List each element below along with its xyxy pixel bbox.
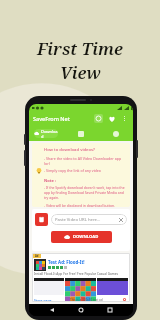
staticText: - Simply copy the link of any video (44, 168, 101, 173)
button[interactable]: Recent apps (104, 304, 116, 316)
staticText: Test Ad: Flood-It! (48, 259, 85, 265)
button[interactable]: How to download videos? (32, 143, 130, 207)
staticText: app by finding Download Saved Private Me… (44, 190, 124, 195)
button[interactable]: Paste (35, 213, 48, 226)
staticText: - If the Spotify download doesn't work, … (44, 185, 125, 190)
button[interactable]: Help (94, 114, 103, 123)
button[interactable]: Back (46, 304, 58, 316)
staticText: Ad (35, 254, 39, 258)
staticText: Note : (44, 178, 57, 183)
staticText: try again. (44, 195, 60, 200)
button[interactable]: Download (34, 129, 58, 138)
staticText: Paste Video URL here... (55, 217, 101, 223)
button[interactable]: Store page (34, 298, 52, 301)
button[interactable]: Home (75, 304, 87, 316)
button[interactable]: More options (120, 114, 129, 123)
staticText: This is a 320x50 test ad (70, 298, 103, 301)
button[interactable]: Favorites (107, 114, 116, 123)
staticText: How to download videos? (44, 147, 95, 153)
staticText: View (60, 61, 101, 84)
button[interactable]: Ad (32, 253, 130, 302)
staticText: First Time (37, 37, 123, 60)
button[interactable]: DOWNLOAD (51, 231, 112, 243)
button[interactable]: Library (63, 126, 98, 141)
staticText: Install Flood-It App For Free! Free Popu… (34, 272, 119, 276)
button[interactable]: Settings (98, 126, 133, 141)
staticText: Download (41, 129, 58, 138)
staticText: - Video will be displayed in download bu… (44, 203, 116, 207)
staticText: DOWNLOAD (73, 234, 99, 240)
staticText: SaveFrom Net (33, 115, 70, 122)
staticText: - Share the video to All Video Downloade… (44, 156, 126, 166)
button[interactable]: Paste Video URL here... (51, 214, 127, 225)
